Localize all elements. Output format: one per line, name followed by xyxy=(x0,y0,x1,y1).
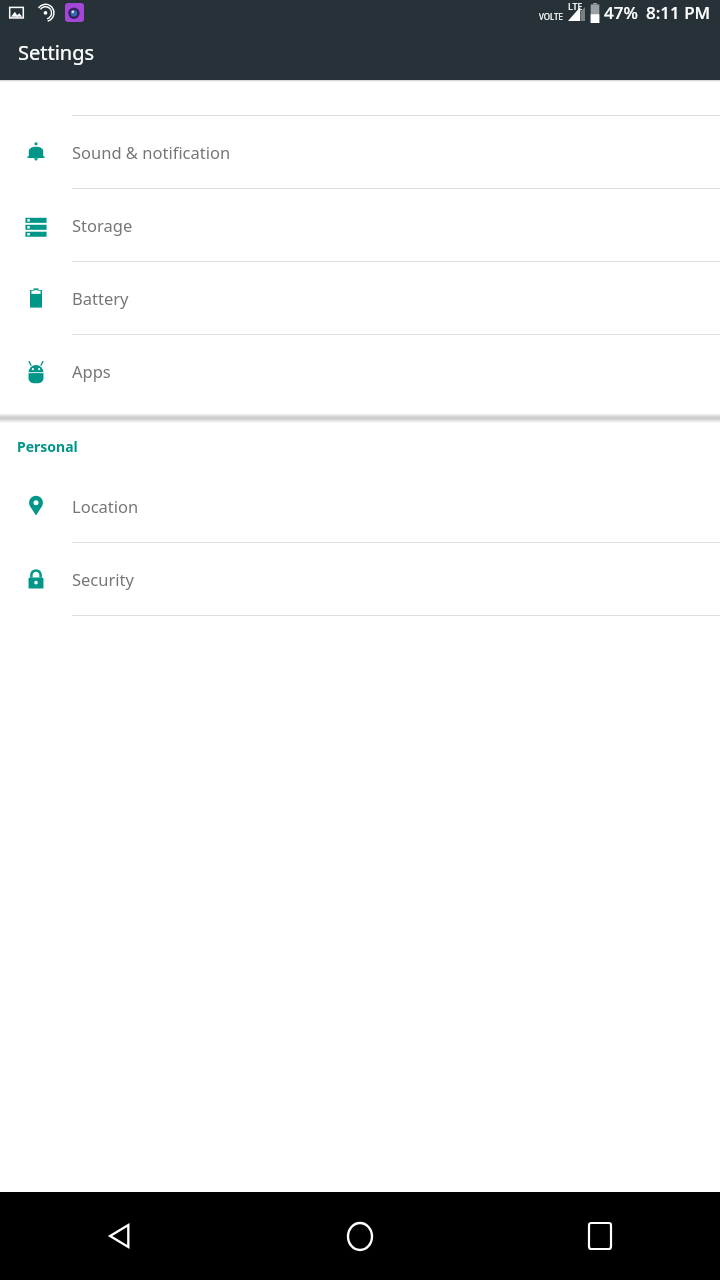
button[interactable]: Battery xyxy=(0,262,720,334)
staticText: Storage xyxy=(72,214,133,236)
staticText: Apps xyxy=(72,360,111,382)
button[interactable]: Recent apps xyxy=(480,1192,720,1280)
staticText: VOLTE xyxy=(539,11,563,22)
staticText: Personal xyxy=(17,437,78,456)
button[interactable]: Storage xyxy=(0,189,720,261)
button[interactable]: Back xyxy=(0,1192,240,1280)
button[interactable]: Home xyxy=(240,1192,480,1280)
staticText: Settings xyxy=(18,39,95,66)
staticText: Sound & notification xyxy=(72,141,231,163)
staticText: Security xyxy=(72,568,134,590)
button[interactable]: Apps xyxy=(0,335,720,407)
button[interactable]: Sound & notification xyxy=(0,116,720,188)
staticText: LTE xyxy=(568,0,583,12)
staticText: Location xyxy=(72,495,139,517)
button[interactable]: Location xyxy=(0,470,720,542)
staticText: Battery xyxy=(72,287,129,309)
button[interactable]: Security xyxy=(0,543,720,615)
staticText: 47% xyxy=(604,1,638,24)
staticText: 8:11 PM xyxy=(646,1,711,24)
